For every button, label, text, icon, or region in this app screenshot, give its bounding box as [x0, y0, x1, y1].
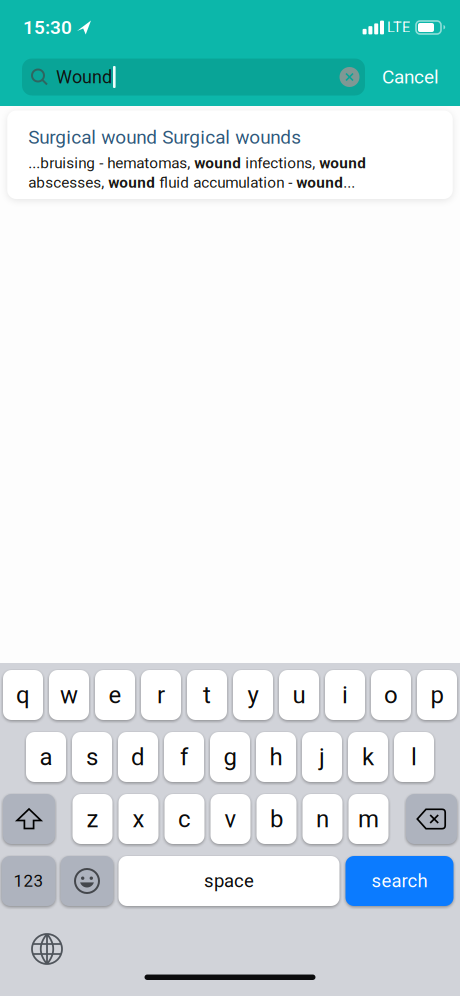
staticText: t	[203, 681, 211, 709]
staticText: l	[411, 743, 417, 771]
button[interactable]: i	[325, 670, 365, 720]
button[interactable]: h	[256, 732, 296, 782]
button[interactable]: u	[279, 670, 319, 720]
staticText: Wound	[56, 67, 112, 87]
button[interactable]: Cancel	[382, 66, 439, 88]
button[interactable]: Clear text	[339, 67, 359, 87]
staticText: k	[362, 743, 374, 771]
staticText: q	[16, 681, 30, 709]
button[interactable]: Shift	[3, 794, 55, 844]
button[interactable]: Next keyboard	[31, 933, 63, 965]
staticText: space	[204, 870, 254, 891]
button[interactable]: search	[345, 856, 453, 906]
staticText: n	[316, 805, 329, 833]
button[interactable]: Search	[22, 58, 365, 95]
button[interactable]: z	[72, 794, 112, 844]
staticText: ...bruising - hematomas, wound infection…	[28, 154, 366, 172]
staticText: w	[60, 681, 78, 709]
staticText: x	[132, 805, 144, 833]
staticText: v	[224, 805, 236, 833]
button[interactable]: x	[118, 794, 158, 844]
staticText: y	[247, 681, 258, 709]
staticText: h	[269, 743, 282, 771]
button[interactable]: o	[371, 670, 411, 720]
staticText: e	[108, 681, 121, 709]
button[interactable]: j	[302, 732, 342, 782]
staticText: u	[292, 681, 305, 709]
button[interactable]: a	[26, 732, 66, 782]
staticText: a	[39, 743, 52, 771]
staticText: abscesses, wound fluid accumulation - wo…	[28, 174, 355, 191]
staticText: c	[178, 805, 191, 833]
staticText: Surgical wound Surgical wounds	[28, 126, 301, 148]
button[interactable]: p	[417, 670, 457, 720]
staticText: z	[86, 805, 98, 833]
staticText: p	[430, 681, 443, 709]
button[interactable]: k	[348, 732, 388, 782]
button[interactable]: w	[49, 670, 89, 720]
staticText: 123	[13, 871, 43, 891]
staticText: 15:30	[23, 17, 72, 38]
button[interactable]: d	[118, 732, 158, 782]
button[interactable]: s	[72, 732, 112, 782]
button[interactable]: b	[256, 794, 296, 844]
button[interactable]: n	[302, 794, 342, 844]
staticText: j	[319, 743, 325, 771]
button[interactable]: m	[348, 794, 388, 844]
button[interactable]: space	[118, 856, 339, 906]
button[interactable]: y	[233, 670, 273, 720]
button[interactable]: r	[141, 670, 181, 720]
button[interactable]: Delete	[406, 794, 457, 844]
button[interactable]: t	[187, 670, 227, 720]
staticText: g	[223, 743, 236, 771]
staticText: f	[180, 743, 188, 771]
staticText: search	[371, 870, 427, 891]
staticText: m	[358, 805, 379, 833]
button[interactable]: Emoji	[60, 856, 113, 906]
button[interactable]: Surgical wound Surgical wounds	[7, 110, 453, 199]
staticText: Cancel	[382, 66, 439, 88]
button[interactable]: f	[164, 732, 204, 782]
button[interactable]: l	[394, 732, 434, 782]
button[interactable]: e	[95, 670, 135, 720]
staticText: r	[157, 681, 165, 709]
button[interactable]: g	[210, 732, 250, 782]
staticText: s	[86, 743, 98, 771]
staticText: o	[384, 681, 398, 709]
staticText: i	[342, 681, 348, 709]
staticText: LTE	[387, 19, 410, 36]
button[interactable]: 123	[1, 856, 55, 906]
button[interactable]: v	[210, 794, 250, 844]
staticText: d	[131, 743, 145, 771]
button[interactable]: q	[3, 670, 43, 720]
staticText: b	[270, 805, 283, 833]
button[interactable]: c	[164, 794, 204, 844]
